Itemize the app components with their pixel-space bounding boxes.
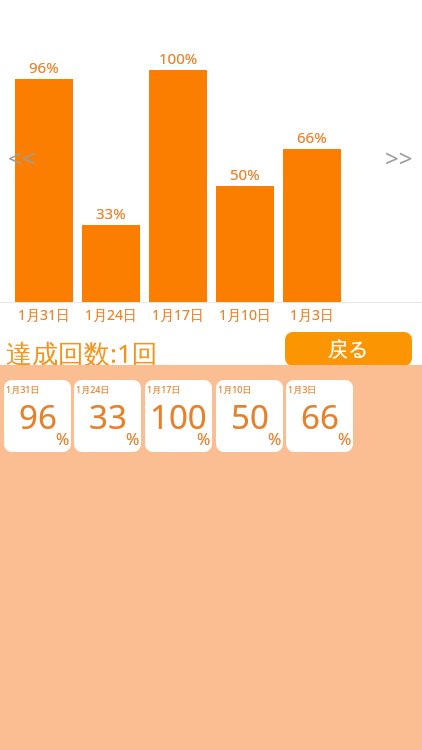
staticText: 1月3日 <box>288 383 317 395</box>
staticText: 1月17日 <box>147 383 181 395</box>
staticText: % <box>126 428 140 450</box>
staticText: 50% <box>230 164 260 184</box>
staticText: 1月31日 <box>6 383 40 395</box>
staticText: 戻る <box>328 337 369 362</box>
staticText: % <box>56 428 70 450</box>
staticText: 96 <box>19 394 57 439</box>
staticText: 1月31日 <box>18 305 71 324</box>
staticText: 100% <box>159 48 198 68</box>
staticText: 1月10日 <box>218 383 252 395</box>
button[interactable]: 1月17日 <box>145 380 212 452</box>
button[interactable]: 1月3日 <box>286 380 353 452</box>
staticText: 33% <box>96 203 126 223</box>
button[interactable]: 1月31日 <box>4 380 71 452</box>
staticText: 66% <box>297 127 327 147</box>
staticText: 66 <box>301 394 339 439</box>
staticText: 96% <box>29 57 59 77</box>
staticText: 1月24日 <box>76 383 110 395</box>
staticText: >> <box>385 141 413 174</box>
staticText: % <box>338 428 352 450</box>
staticText: 50 <box>231 394 269 439</box>
staticText: 1月17日 <box>152 305 205 324</box>
staticText: % <box>197 428 211 450</box>
button[interactable]: << <box>8 141 36 174</box>
button[interactable]: 戻る <box>285 332 412 366</box>
staticText: 1月10日 <box>219 305 272 324</box>
staticText: 33 <box>89 394 127 439</box>
staticText: 達成回数:1回 <box>6 335 158 371</box>
staticText: 100 <box>150 394 207 439</box>
button[interactable]: 1月10日 <box>216 380 283 452</box>
staticText: 1月24日 <box>85 305 138 324</box>
button[interactable]: >> <box>385 141 413 174</box>
staticText: << <box>8 141 36 174</box>
staticText: % <box>268 428 282 450</box>
staticText: 1月3日 <box>290 305 335 324</box>
button[interactable]: 1月24日 <box>74 380 141 452</box>
